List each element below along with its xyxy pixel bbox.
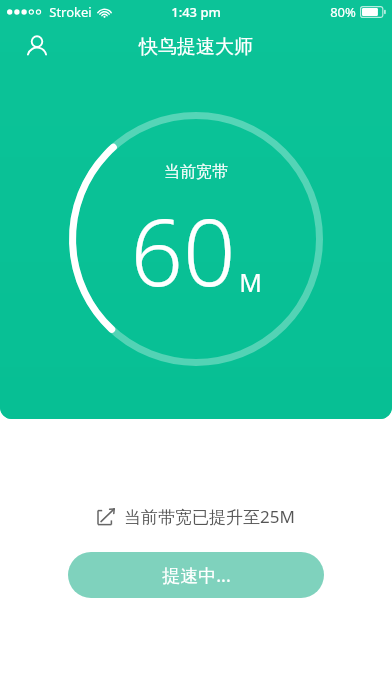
button[interactable]: Profile	[14, 24, 60, 70]
staticText: Strokei	[49, 3, 92, 21]
button[interactable]: 提速中...	[68, 552, 324, 598]
staticText: 80%	[330, 3, 356, 21]
staticText: 60	[130, 188, 236, 313]
staticText: 1:43 pm	[171, 3, 221, 21]
staticText: 当前带宽已提升至25M	[124, 505, 295, 528]
staticText: 提速中...	[162, 563, 231, 588]
staticText: 快鸟提速大师	[139, 35, 253, 59]
staticText: 当前宽带	[164, 162, 228, 182]
staticText: M	[239, 265, 262, 299]
